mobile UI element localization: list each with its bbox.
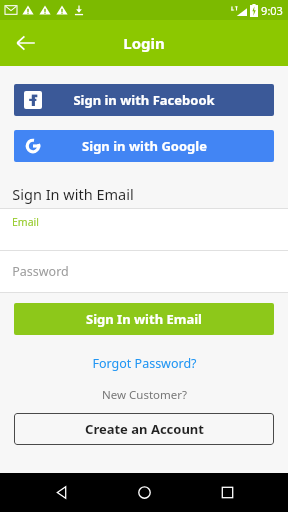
staticText: Password: [12, 263, 69, 280]
button[interactable]: Email: [0, 209, 288, 250]
staticText: Sign in with Facebook: [73, 91, 215, 109]
button[interactable]: Sign In with Email: [14, 303, 274, 335]
staticText: Email: [12, 215, 39, 229]
button[interactable]: Recent apps: [205, 473, 249, 512]
button[interactable]: Forgot Password?: [84, 352, 205, 375]
staticText: Forgot Password?: [92, 355, 197, 372]
staticText: Sign In with Email: [86, 310, 202, 328]
staticText: Create an Account: [85, 420, 204, 438]
button[interactable]: Sign in with Facebook: [14, 84, 274, 116]
staticText: Sign in with Google: [82, 137, 207, 155]
staticText: New Customer?: [102, 387, 187, 403]
staticText: Sign In with Email: [12, 184, 134, 204]
staticText: Login: [123, 33, 165, 53]
staticText: 9:03: [261, 3, 283, 18]
button[interactable]: Back: [39, 473, 83, 512]
button[interactable]: Password: [0, 251, 288, 292]
button[interactable]: Sign in with Google: [14, 130, 274, 162]
button[interactable]: Create an Account: [14, 413, 274, 445]
button[interactable]: Back: [6, 23, 46, 63]
button[interactable]: Home: [122, 473, 166, 512]
